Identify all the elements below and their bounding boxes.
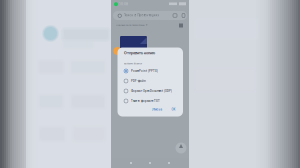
button[interactable]: Текст в формате TXT [111, 0, 189, 168]
staticText: Выберите формат [124, 62, 142, 65]
staticText: Поиск в Презентациях [123, 14, 158, 17]
staticText: PowerPoint (PPTX) [131, 69, 158, 73]
staticText: Текст в формате TXT [131, 99, 160, 103]
staticText: Формат OpenDocument (ODP) [131, 89, 172, 93]
button[interactable]: Формат OpenDocument (ODP) [111, 0, 189, 168]
staticText: PDF-файл [131, 79, 146, 83]
staticText: Отмена [151, 108, 162, 111]
staticText: 10:08 [119, 2, 128, 6]
button[interactable]: Поиск в Презентациях [113, 11, 187, 20]
button[interactable]: PDF-файл [111, 0, 189, 168]
staticText: ОК [171, 108, 175, 111]
button[interactable]: PowerPoint (PPTX) [111, 0, 189, 168]
button[interactable]: Отмена [111, 0, 189, 168]
staticText: Недавно были просмотрены ▾ [116, 23, 147, 26]
button[interactable]: ОК [111, 0, 189, 168]
button[interactable]: List view [111, 0, 189, 168]
staticText: Отправить копию [124, 51, 155, 55]
button[interactable]: New presentation [175, 142, 186, 153]
